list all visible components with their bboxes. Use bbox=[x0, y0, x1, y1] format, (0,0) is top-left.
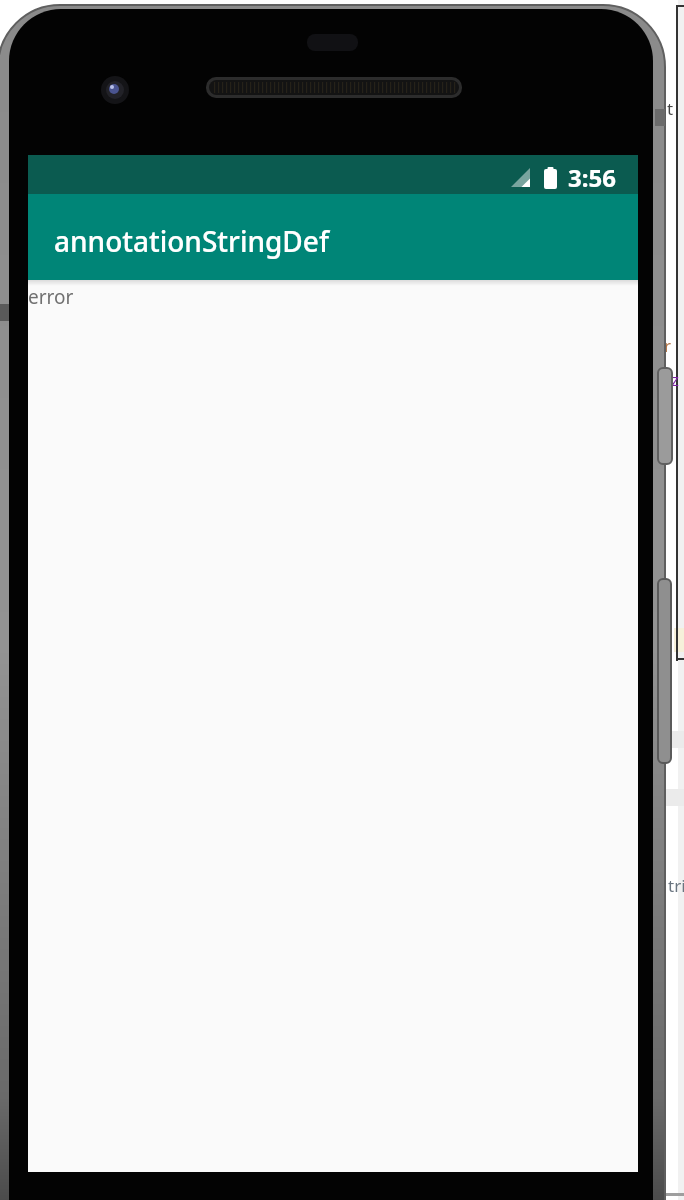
staticText: error bbox=[28, 284, 74, 310]
staticText: 3:56 bbox=[568, 161, 616, 194]
staticText: z bbox=[671, 368, 679, 391]
staticText: t bbox=[667, 97, 674, 120]
staticText: r bbox=[664, 334, 672, 357]
button[interactable]: error bbox=[28, 280, 638, 314]
staticText: annotationStringDef bbox=[54, 222, 329, 260]
staticText: tri bbox=[668, 874, 684, 897]
